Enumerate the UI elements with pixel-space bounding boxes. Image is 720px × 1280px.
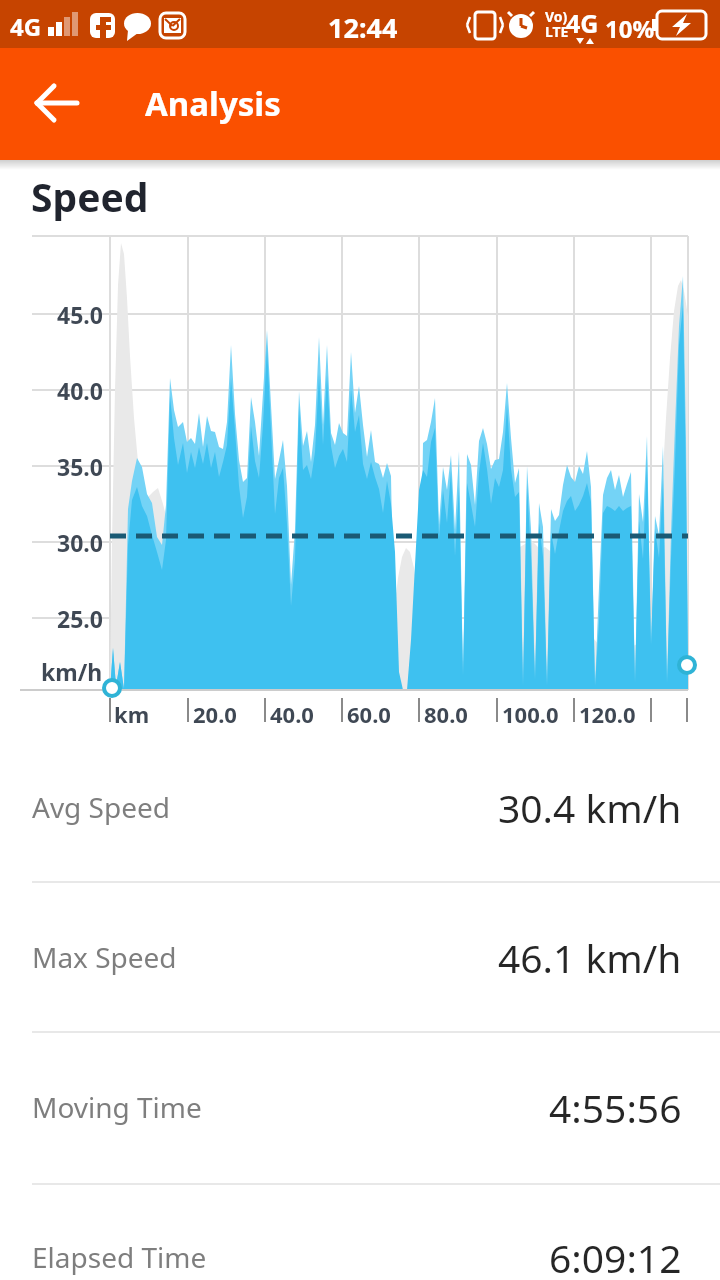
staticText: 20.0 [193, 699, 237, 729]
staticText: 40.0 [270, 699, 314, 729]
staticText: 80.0 [424, 699, 468, 729]
staticText: Max Speed [32, 938, 177, 976]
staticText: Avg Speed [32, 788, 171, 826]
staticText: 6:09:12 [549, 1231, 682, 1280]
staticText: 46.1 km/h [498, 931, 682, 983]
staticText: Elapsed Time [32, 1238, 207, 1276]
staticText: 30.4 km/h [498, 781, 682, 833]
staticText: 40.0 [57, 375, 103, 405]
staticText: 4G [566, 6, 599, 40]
staticText: 4G [10, 10, 42, 43]
staticText: 120.0 [579, 699, 636, 729]
button[interactable] [24, 70, 90, 136]
staticText: km/h [41, 656, 103, 686]
staticText: 45.0 [57, 299, 103, 329]
staticText: Vo) [545, 7, 568, 26]
staticText: 35.0 [57, 451, 103, 481]
staticText: 4:55:56 [549, 1081, 682, 1133]
staticText: 60.0 [347, 699, 391, 729]
staticText: Analysis [145, 81, 281, 126]
staticText: 10% [605, 12, 655, 45]
staticText: Speed [31, 170, 149, 223]
staticText: Moving Time [32, 1088, 202, 1126]
staticText: km [114, 699, 150, 729]
staticText: 100.0 [502, 699, 559, 729]
staticText: 12:44 [328, 9, 398, 46]
staticText: 30.0 [57, 527, 103, 557]
staticText: LTE [545, 22, 569, 41]
staticText: 25.0 [57, 603, 103, 633]
